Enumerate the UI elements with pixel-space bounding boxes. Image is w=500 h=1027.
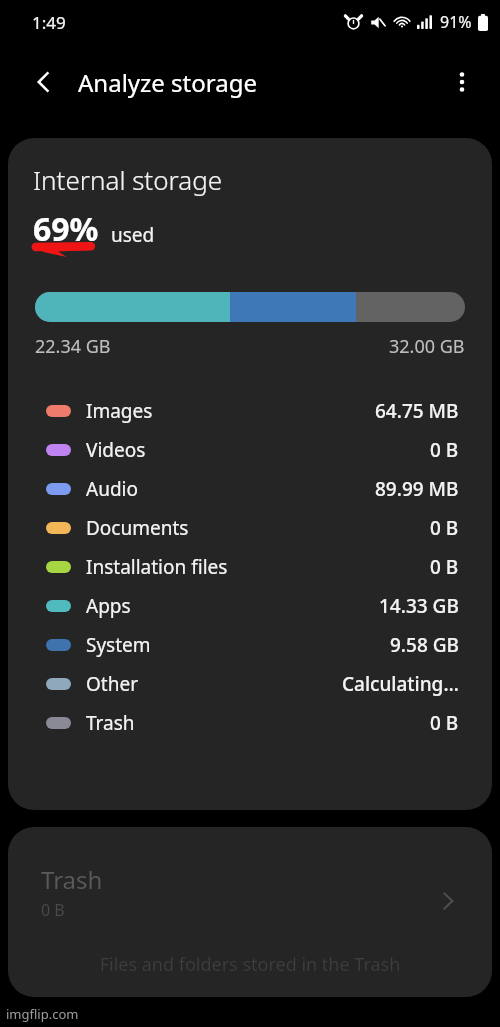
staticText: 0 B [430,554,459,580]
button[interactable]: Apps [8,586,492,625]
staticText: used [111,222,155,248]
staticText: Calculating… [342,671,459,697]
staticText: 9.58 GB [390,632,459,658]
staticText: 14.33 GB [379,593,459,619]
button[interactable]: Back [22,60,66,104]
staticText: Files and folders stored in the Trash [8,952,492,977]
staticText: 32.00 GB [389,334,465,359]
staticText: Videos [86,437,146,463]
staticText: Audio [86,476,138,502]
button[interactable]: Trash [8,827,492,997]
button[interactable]: Installation files [8,547,492,586]
staticText: 0 B [430,710,459,736]
button[interactable]: System [8,625,492,664]
staticText: 69% [33,207,99,251]
other: Open Trash [436,889,460,913]
staticText: System [86,632,151,658]
staticText: 22.34 GB [35,334,111,359]
staticText: Documents [86,515,189,541]
staticText: Trash [41,863,103,896]
staticText: Other [86,671,139,697]
staticText: 91% [440,11,472,33]
button[interactable]: Audio [8,469,492,508]
staticText: 0 B [430,515,459,541]
staticText: Images [86,398,153,424]
staticText: 64.75 MB [375,398,459,424]
staticText: Installation files [86,554,228,580]
staticText: imgflip.com [6,1005,79,1023]
staticText: 89.99 MB [375,476,459,502]
button[interactable]: Images [8,391,492,430]
button[interactable]: Internal storage [8,138,492,810]
button[interactable]: Videos [8,430,492,469]
staticText: 0 B [41,899,65,921]
button[interactable]: Trash [8,703,492,742]
staticText: Trash [86,710,135,736]
button[interactable]: More options [440,60,484,104]
staticText: Analyze storage [78,66,257,99]
button[interactable]: Documents [8,508,492,547]
staticText: Apps [86,593,131,619]
staticText: 1:49 [32,11,66,34]
staticText: 0 B [430,437,459,463]
button[interactable]: Other [8,664,492,703]
staticText: Internal storage [33,162,223,197]
